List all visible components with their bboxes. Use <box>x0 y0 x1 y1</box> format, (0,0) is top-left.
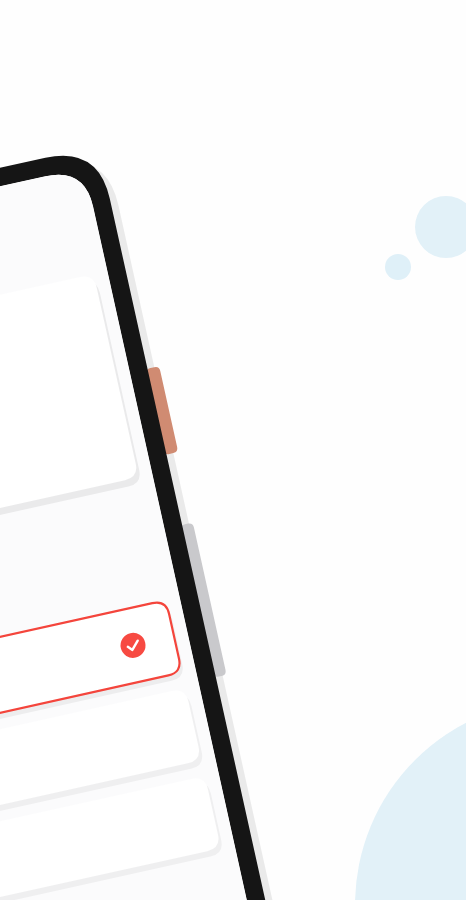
button[interactable]: Selected option card <box>0 0 466 900</box>
